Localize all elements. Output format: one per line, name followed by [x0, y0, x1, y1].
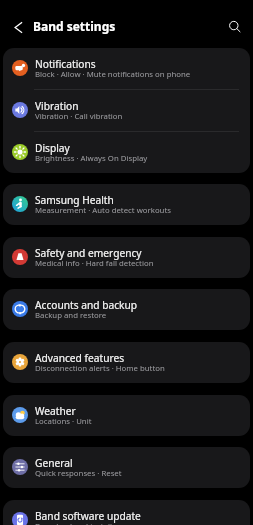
- staticText: Brightness · Always On Display: [35, 153, 148, 164]
- button[interactable]: Notifications: [3, 48, 250, 89]
- staticText: Locations · Unit: [35, 416, 92, 427]
- staticText: Advanced features: [35, 351, 125, 365]
- staticText: Weather: [35, 404, 76, 418]
- staticText: Samsung Health: [35, 193, 114, 207]
- staticText: Download and install: [35, 521, 112, 525]
- button[interactable]: Samsung Health: [3, 184, 250, 225]
- button[interactable]: Advanced features: [3, 342, 250, 383]
- staticText: Disconnection alerts · Home button: [35, 363, 165, 374]
- staticText: Block · Allow · Mute notifications on ph…: [35, 69, 191, 80]
- staticText: Notifications: [35, 57, 96, 71]
- button[interactable]: General: [3, 447, 250, 488]
- button[interactable]: Navigate up: [3, 12, 33, 42]
- staticText: Band software update: [35, 509, 141, 523]
- staticText: Medical info · Hard fall detection: [35, 258, 154, 269]
- button[interactable]: Vibration: [3, 90, 250, 131]
- button[interactable]: Weather: [3, 395, 250, 436]
- staticText: Vibration · Call vibration: [35, 111, 123, 122]
- button[interactable]: Band software update: [3, 500, 250, 525]
- button[interactable]: Search: [218, 10, 252, 44]
- button[interactable]: Accounts and backup: [3, 289, 250, 330]
- staticText: Accounts and backup: [35, 298, 138, 312]
- staticText: Display: [35, 141, 70, 155]
- staticText: Band settings: [33, 18, 116, 34]
- staticText: Quick responses · Reset: [35, 468, 122, 479]
- staticText: Backup and restore: [35, 310, 107, 321]
- staticText: General: [35, 456, 73, 470]
- button[interactable]: Safety and emergency: [3, 237, 250, 278]
- staticText: Safety and emergency: [35, 246, 142, 260]
- button[interactable]: Display: [3, 132, 250, 173]
- staticText: Vibration: [35, 99, 79, 113]
- staticText: Measurement · Auto detect workouts: [35, 205, 171, 216]
